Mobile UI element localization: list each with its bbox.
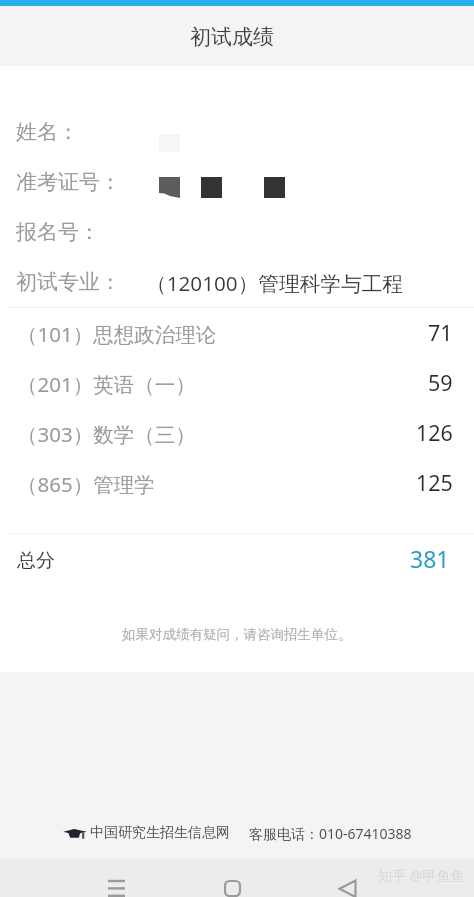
button[interactable]: Back [330,873,364,897]
staticText: 381 [410,543,450,574]
staticText: 125 [416,468,453,497]
button[interactable]: Recent apps [99,873,133,897]
staticText: 126 [416,418,453,447]
button[interactable]: 姓名： [0,107,474,157]
staticText: 初试成绩 [190,24,274,50]
button[interactable]: 中国研究生招生信息网 [0,815,474,851]
staticText: 准考证号： [16,169,121,195]
staticText: 报名号： [16,219,100,245]
staticText: （101）思想政治理论 [17,320,217,348]
staticText: 姓名： [16,119,79,145]
staticText: （865）管理学 [17,470,155,498]
button[interactable]: 报名号： [0,207,474,257]
button[interactable]: 初试专业： [0,257,474,307]
staticText: （201）英语（一） [17,370,196,398]
staticText: 总分 [17,549,55,573]
button[interactable]: Home [215,873,249,897]
staticText: 59 [428,368,453,397]
staticText: 初试专业： [16,269,121,295]
staticText: （120100）管理科学与工程 [146,269,404,297]
staticText: 知乎 @甲鱼鱼 [378,866,465,885]
staticText: （303）数学（三） [17,420,196,448]
button[interactable]: （865）管理学 [0,459,474,509]
button[interactable]: 总分 [0,536,474,586]
staticText: 如果对成绩有疑问，请咨询招生单位。 [122,626,352,643]
staticText: 中国研究生招生信息网 [90,824,230,842]
staticText: 客服电话：010-67410388 [249,824,412,843]
button[interactable]: （101）思想政治理论 [0,309,474,359]
button[interactable]: （303）数学（三） [0,409,474,459]
button[interactable]: （201）英语（一） [0,359,474,409]
staticText: 71 [428,318,453,347]
